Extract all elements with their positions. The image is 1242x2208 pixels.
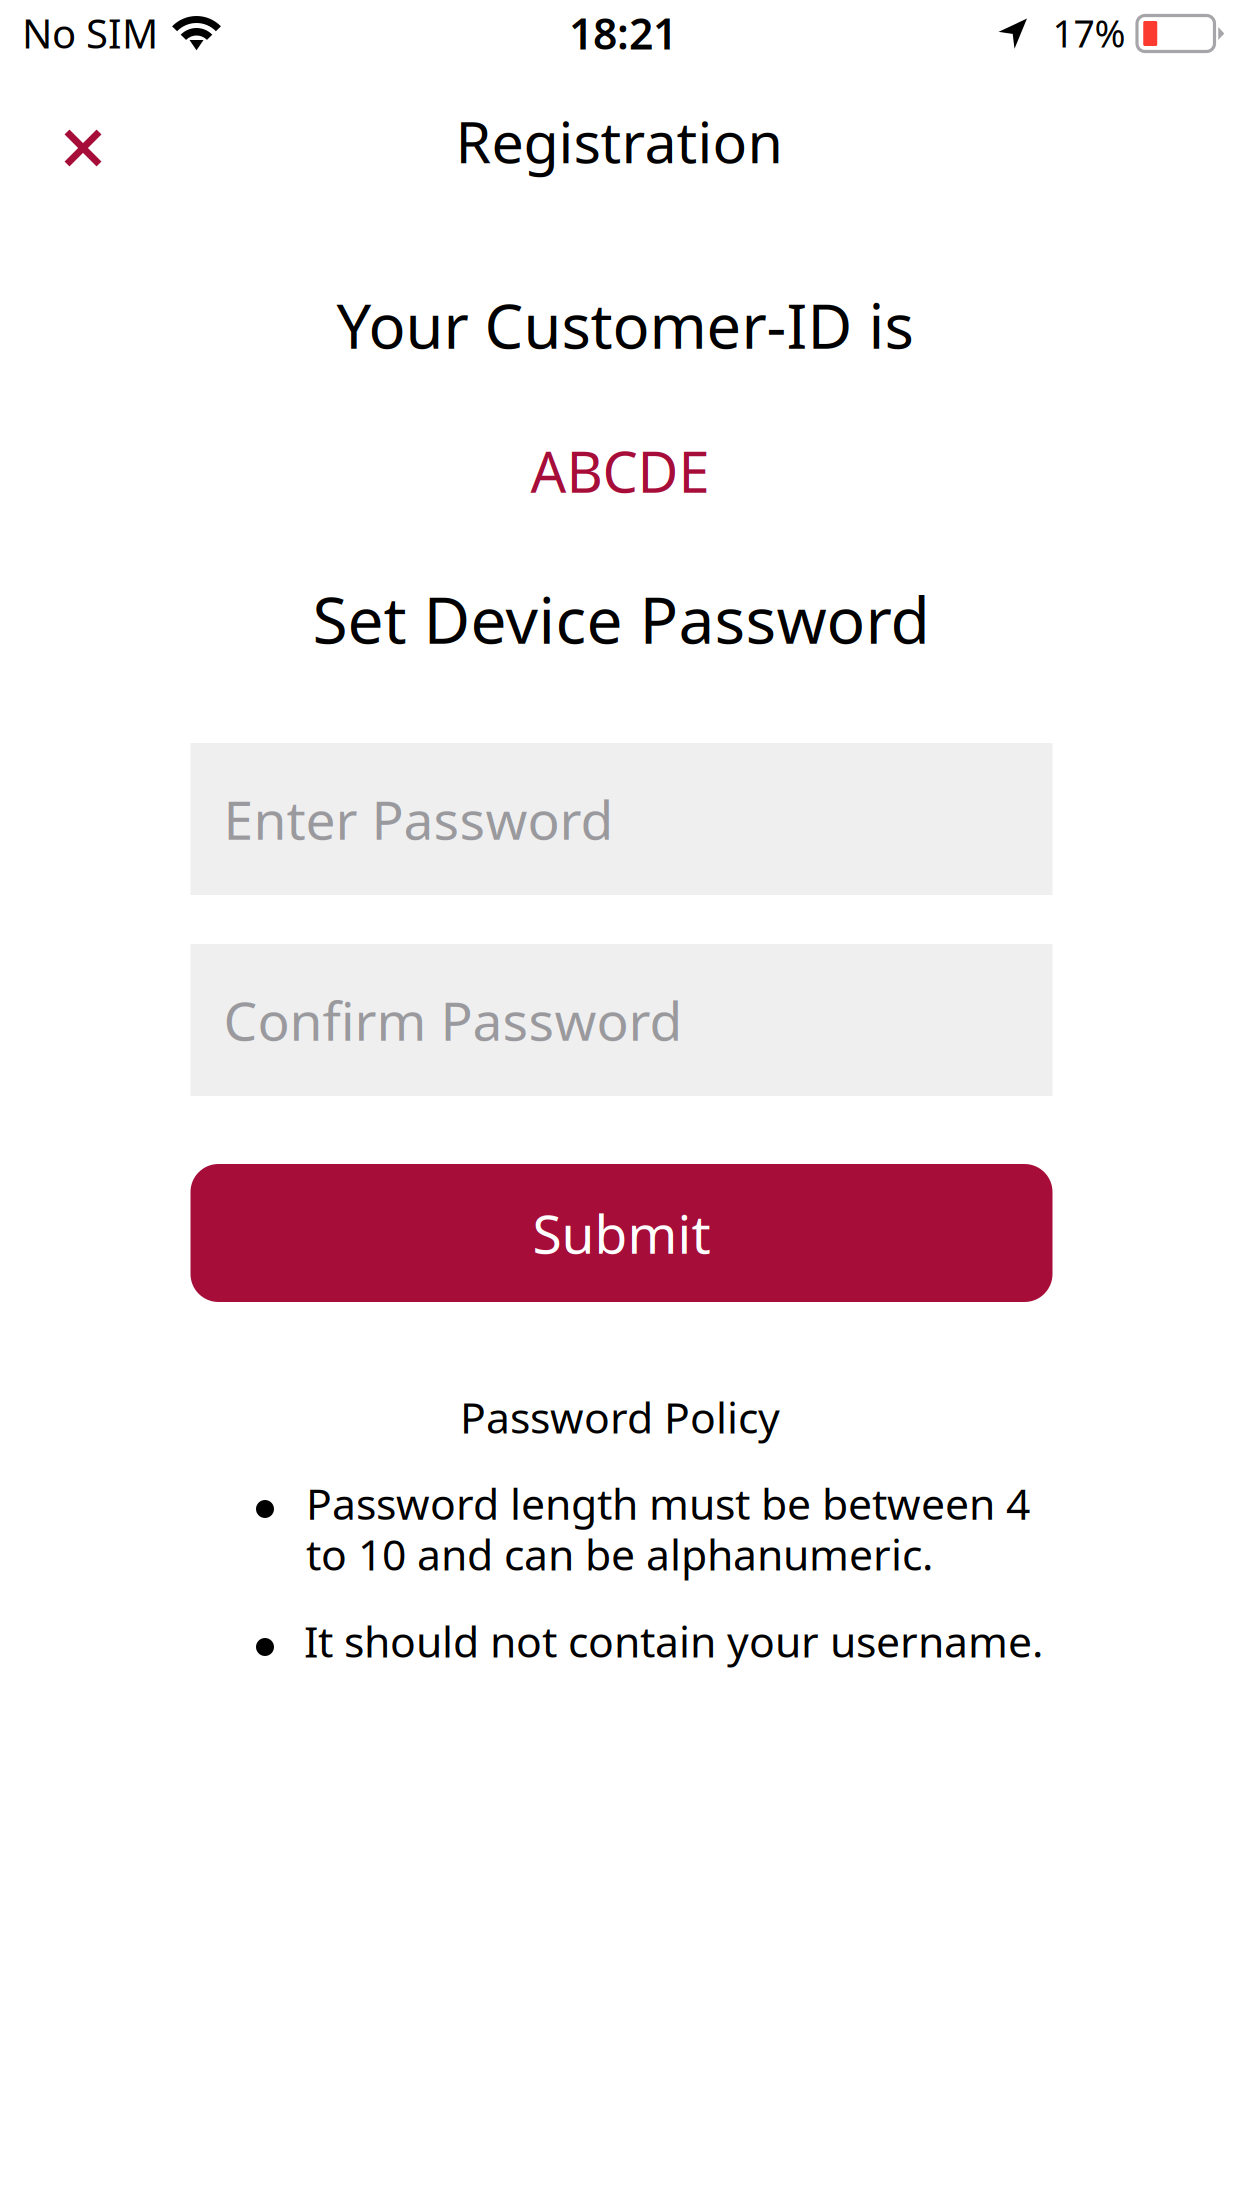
- button[interactable]: Close: [28, 100, 138, 196]
- staticText: Submit: [532, 1198, 710, 1268]
- staticText: 17%: [1052, 8, 1125, 58]
- staticText: ABCDE: [530, 434, 709, 508]
- staticText: No SIM: [22, 6, 158, 59]
- staticText: Password length must be between 4 to 10 …: [306, 1475, 1030, 1582]
- staticText: Password Policy: [460, 1389, 780, 1445]
- staticText: It should not contain your username.: [304, 1613, 1043, 1669]
- button[interactable]: Enter Password: [190, 743, 1052, 895]
- staticText: 18:21: [569, 5, 677, 61]
- staticText: Confirm Password: [223, 985, 682, 1055]
- staticText: Set Device Password: [312, 576, 929, 661]
- staticText: Registration: [455, 103, 782, 179]
- staticText: Your Customer-ID is: [336, 284, 913, 366]
- staticText: Enter Password: [223, 784, 613, 854]
- button[interactable]: Confirm Password: [190, 944, 1052, 1096]
- button[interactable]: Submit: [190, 1164, 1052, 1302]
